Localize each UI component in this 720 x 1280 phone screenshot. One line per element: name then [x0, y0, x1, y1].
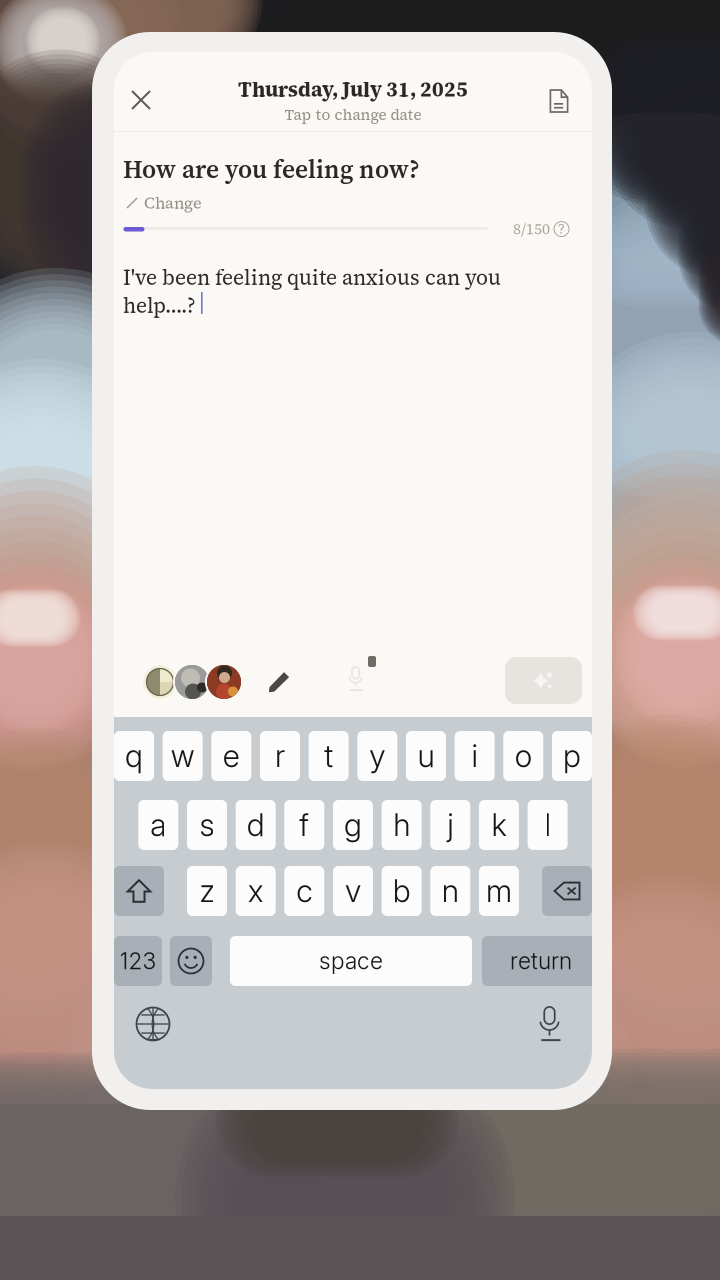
- button[interactable]: t: [309, 731, 349, 781]
- button[interactable]: Send: [505, 657, 582, 704]
- staticText: r: [275, 737, 285, 774]
- button[interactable]: return: [482, 936, 600, 986]
- button[interactable]: space: [230, 936, 472, 986]
- staticText: f: [299, 806, 309, 843]
- button[interactable]: r: [260, 731, 300, 781]
- staticText: m: [486, 872, 512, 909]
- button[interactable]: Delete: [542, 866, 592, 916]
- button[interactable]: s: [187, 800, 227, 850]
- button[interactable]: Open notes: [537, 79, 581, 123]
- staticText: z: [199, 872, 214, 909]
- staticText: d: [247, 806, 265, 843]
- button[interactable]: v: [333, 866, 373, 916]
- staticText: l: [545, 806, 551, 843]
- staticText: Thursday, July 31, 2025: [238, 75, 468, 103]
- button[interactable]: m: [479, 866, 519, 916]
- staticText: i: [472, 737, 478, 774]
- staticText: help….?: [123, 291, 196, 320]
- button[interactable]: o: [503, 731, 543, 781]
- button[interactable]: Change: [126, 191, 202, 215]
- button[interactable]: l: [528, 800, 568, 850]
- button[interactable]: Choose persona: [141, 663, 243, 701]
- staticText: c: [296, 872, 312, 909]
- staticText: Tap to change date: [284, 104, 421, 125]
- staticText: j: [447, 806, 453, 843]
- staticText: k: [491, 806, 506, 843]
- staticText: How are you feeling now?: [123, 152, 420, 186]
- button[interactable]: 123: [114, 936, 162, 986]
- button[interactable]: Voice input: [342, 660, 370, 698]
- staticText: t: [324, 737, 333, 774]
- staticText: ?: [558, 221, 565, 237]
- button[interactable]: e: [211, 731, 251, 781]
- staticText: b: [393, 872, 411, 909]
- button[interactable]: Thursday, July 31, 2025: [208, 76, 498, 124]
- button[interactable]: p: [552, 731, 592, 781]
- staticText: q: [125, 737, 143, 774]
- button[interactable]: y: [357, 731, 397, 781]
- button[interactable]: i: [455, 731, 495, 781]
- button[interactable]: Shift: [114, 866, 164, 916]
- button[interactable]: f: [284, 800, 324, 850]
- staticText: x: [248, 872, 264, 909]
- button[interactable]: q: [114, 731, 154, 781]
- button[interactable]: c: [284, 866, 324, 916]
- staticText: v: [345, 872, 361, 909]
- staticText: y: [369, 737, 385, 774]
- button[interactable]: u: [406, 731, 446, 781]
- button[interactable]: j: [430, 800, 470, 850]
- staticText: 123: [119, 947, 156, 975]
- button[interactable]: z: [187, 866, 227, 916]
- button[interactable]: h: [382, 800, 422, 850]
- button[interactable]: Edit: [262, 663, 296, 701]
- staticText: space: [319, 947, 383, 975]
- button[interactable]: Dictate: [528, 1002, 572, 1046]
- button[interactable]: Switch keyboard: [131, 1002, 175, 1046]
- button[interactable]: n: [430, 866, 470, 916]
- button[interactable]: d: [236, 800, 276, 850]
- button[interactable]: a: [138, 800, 178, 850]
- staticText: g: [344, 806, 362, 843]
- staticText: n: [442, 872, 459, 909]
- button[interactable]: k: [479, 800, 519, 850]
- staticText: 8/150: [513, 219, 550, 239]
- staticText: s: [199, 806, 214, 843]
- staticText: p: [563, 737, 581, 774]
- button[interactable]: x: [236, 866, 276, 916]
- staticText: u: [417, 737, 434, 774]
- staticText: a: [150, 806, 166, 843]
- staticText: Change: [144, 192, 202, 214]
- staticText: I've been feeling quite anxious can you: [123, 263, 501, 292]
- staticText: e: [223, 737, 240, 774]
- staticText: return: [510, 947, 572, 975]
- button[interactable]: w: [163, 731, 203, 781]
- button[interactable]: Close: [119, 78, 163, 122]
- button[interactable]: Emoji keyboard: [170, 936, 212, 986]
- staticText: o: [515, 737, 532, 774]
- button[interactable]: b: [382, 866, 422, 916]
- staticText: w: [171, 737, 195, 774]
- button[interactable]: g: [333, 800, 373, 850]
- staticText: h: [393, 806, 410, 843]
